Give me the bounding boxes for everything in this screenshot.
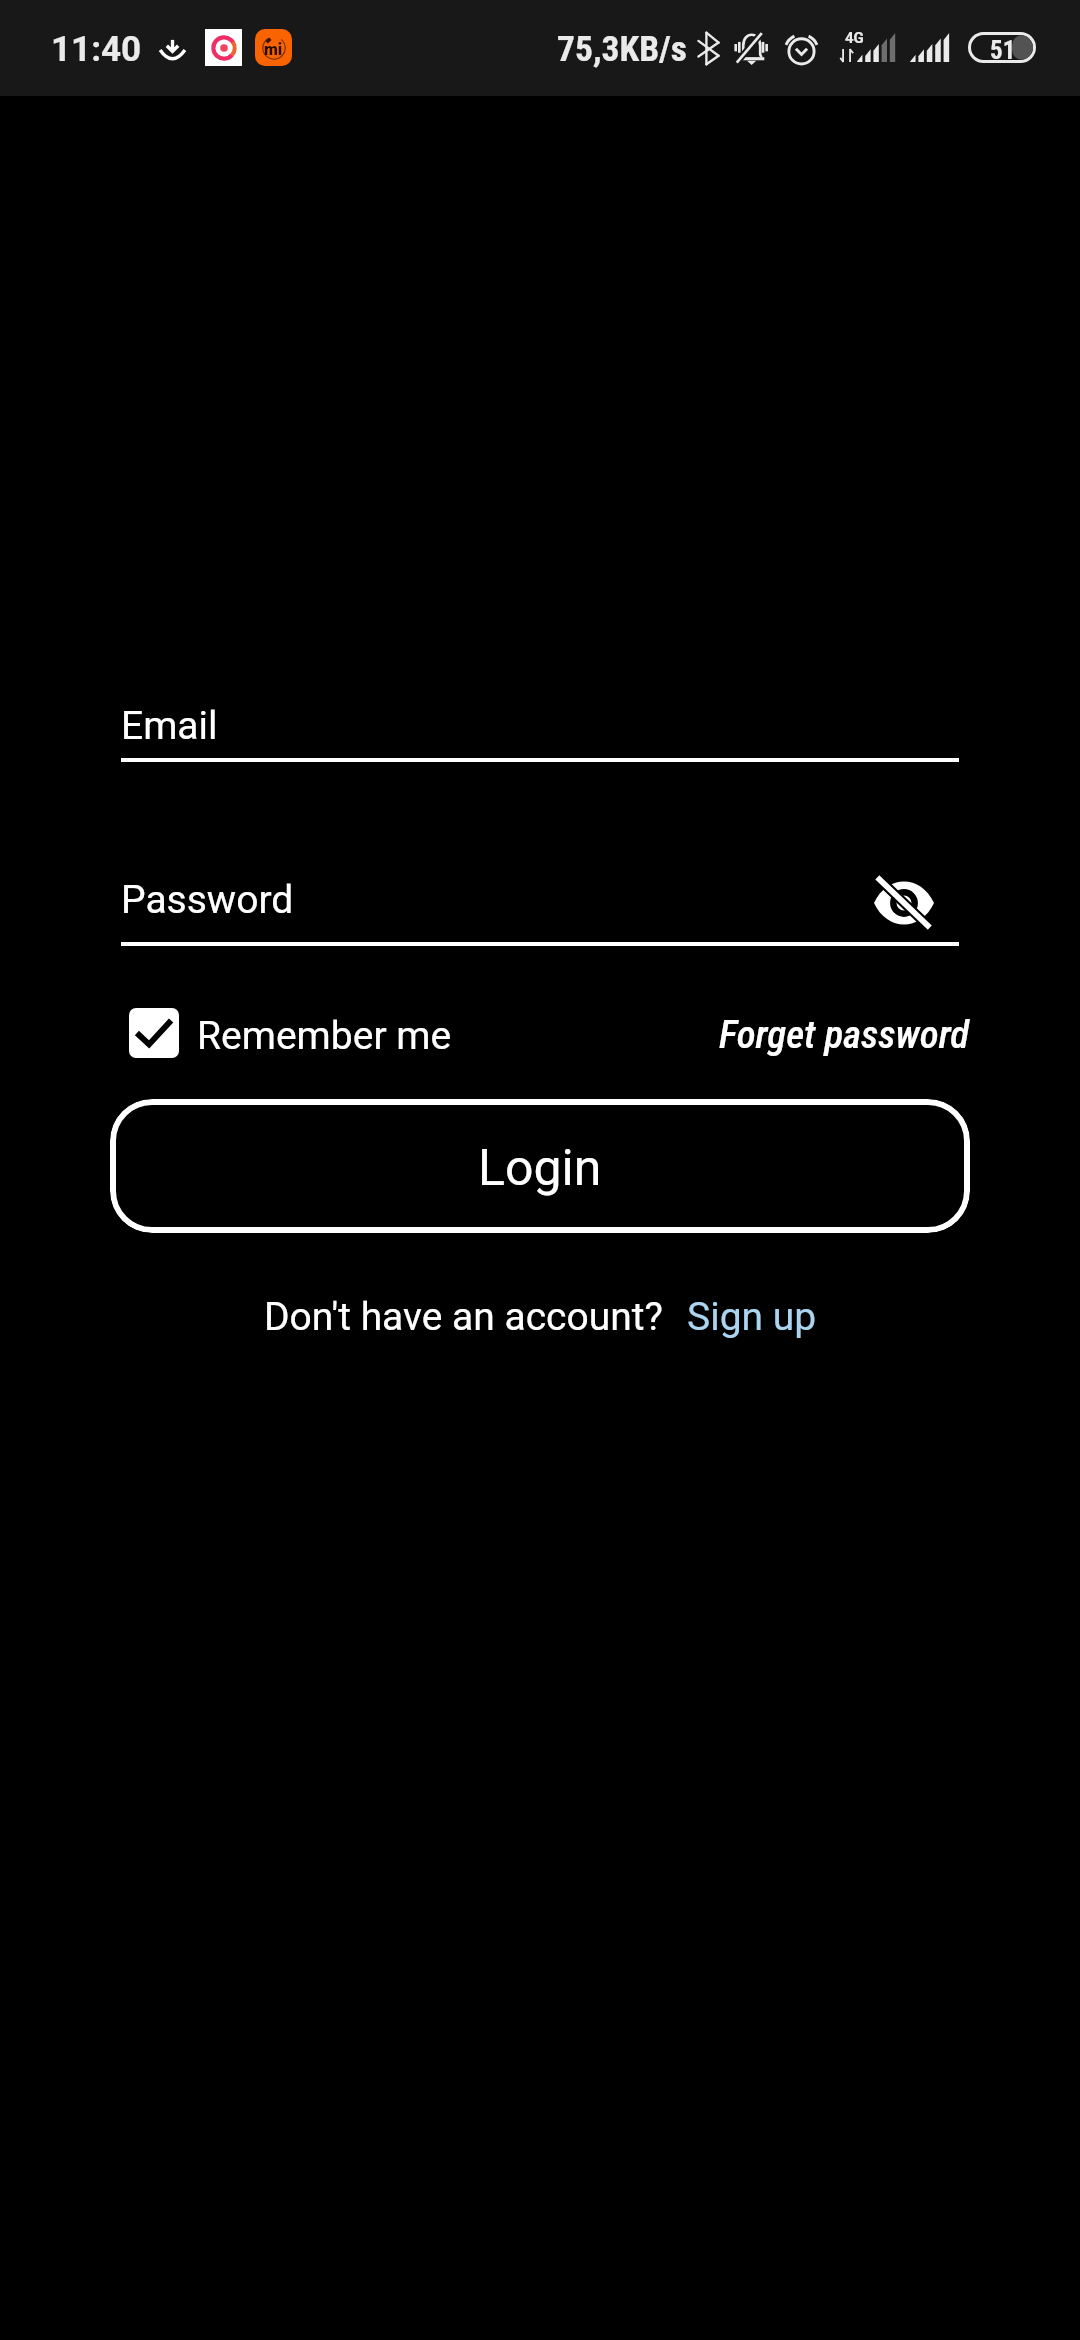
staticText: Don't have an account? <box>264 1294 663 1340</box>
staticText: 51 <box>990 36 1016 60</box>
staticText: Login <box>478 1139 602 1198</box>
staticText: 4G <box>845 29 864 47</box>
staticText: mi <box>264 40 283 59</box>
staticText: 11:40 <box>51 29 142 70</box>
button[interactable]: Forget password <box>719 1012 970 1058</box>
staticText: 75,3KB/s <box>557 28 687 70</box>
button[interactable]: Show password <box>874 876 934 930</box>
button[interactable]: Remember me <box>129 1006 451 1062</box>
button[interactable]: Login <box>110 1099 970 1233</box>
staticText: Email <box>121 703 218 749</box>
button[interactable]: Sign up <box>687 1294 817 1340</box>
staticText: Remember me <box>197 1013 452 1059</box>
staticText: Password <box>121 877 294 923</box>
